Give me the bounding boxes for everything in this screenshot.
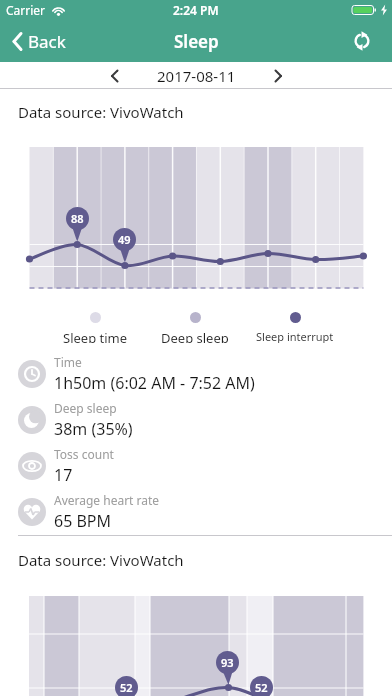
button[interactable]: Deep sleep: [18, 397, 392, 443]
button[interactable]: Time: [18, 351, 392, 397]
staticText: Deep sleep: [54, 400, 117, 416]
staticText: Sleep interrupt: [256, 329, 334, 343]
staticText: 93: [221, 655, 234, 670]
staticText: Toss count: [54, 446, 114, 462]
staticText: Carrier: [6, 2, 46, 18]
staticText: Sleep time: [63, 329, 128, 343]
button[interactable]: [104, 66, 124, 86]
button[interactable]: [268, 66, 288, 86]
button[interactable]: Average heart rate: [18, 489, 392, 535]
button[interactable]: Toss count: [18, 443, 392, 489]
staticText: Average heart rate: [54, 492, 160, 508]
staticText: Deep sleep: [161, 329, 229, 343]
staticText: 2:24 PM: [173, 2, 219, 18]
staticText: 1h50m (6:02 AM - 7:52 AM): [54, 372, 255, 394]
staticText: 52: [120, 680, 133, 695]
staticText: 49: [118, 232, 131, 247]
staticText: Sleep: [174, 30, 219, 53]
staticText: Back: [28, 30, 66, 53]
staticText: Time: [54, 354, 82, 370]
staticText: 52: [255, 680, 268, 695]
button[interactable]: Back: [12, 30, 66, 53]
staticText: 2017-08-11: [157, 66, 236, 86]
staticText: 17: [54, 464, 73, 486]
button[interactable]: [349, 28, 375, 54]
staticText: 65 BPM: [54, 510, 112, 532]
staticText: Data source: VivoWatch: [18, 102, 184, 122]
staticText: 88: [71, 211, 84, 226]
staticText: 38m (35%): [54, 418, 133, 440]
staticText: Data source: VivoWatch: [18, 550, 184, 570]
